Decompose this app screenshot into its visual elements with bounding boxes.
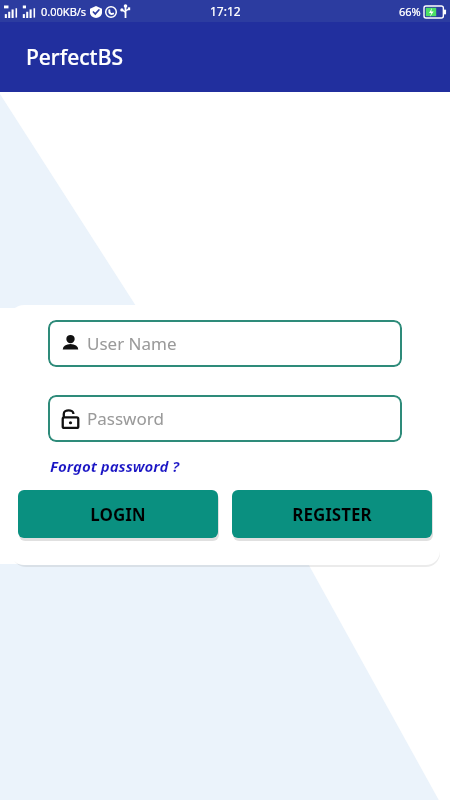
staticText: REGISTER: [292, 503, 372, 526]
staticText: 66%: [399, 4, 421, 19]
button[interactable]: LOGIN: [18, 490, 218, 538]
staticText: Forgot password ?: [50, 456, 180, 476]
button[interactable]: Password field: [48, 395, 402, 442]
staticText: Password: [87, 407, 164, 430]
staticText: LOGIN: [90, 503, 146, 526]
button[interactable]: Forgot password ?: [48, 454, 182, 478]
staticText: 17:12: [210, 3, 241, 19]
staticText: PerfectBS: [26, 43, 123, 72]
staticText: 0.00KB/s: [41, 4, 87, 19]
button[interactable]: User name field: [48, 320, 402, 367]
button[interactable]: REGISTER: [232, 490, 432, 538]
staticText: User Name: [87, 332, 177, 355]
